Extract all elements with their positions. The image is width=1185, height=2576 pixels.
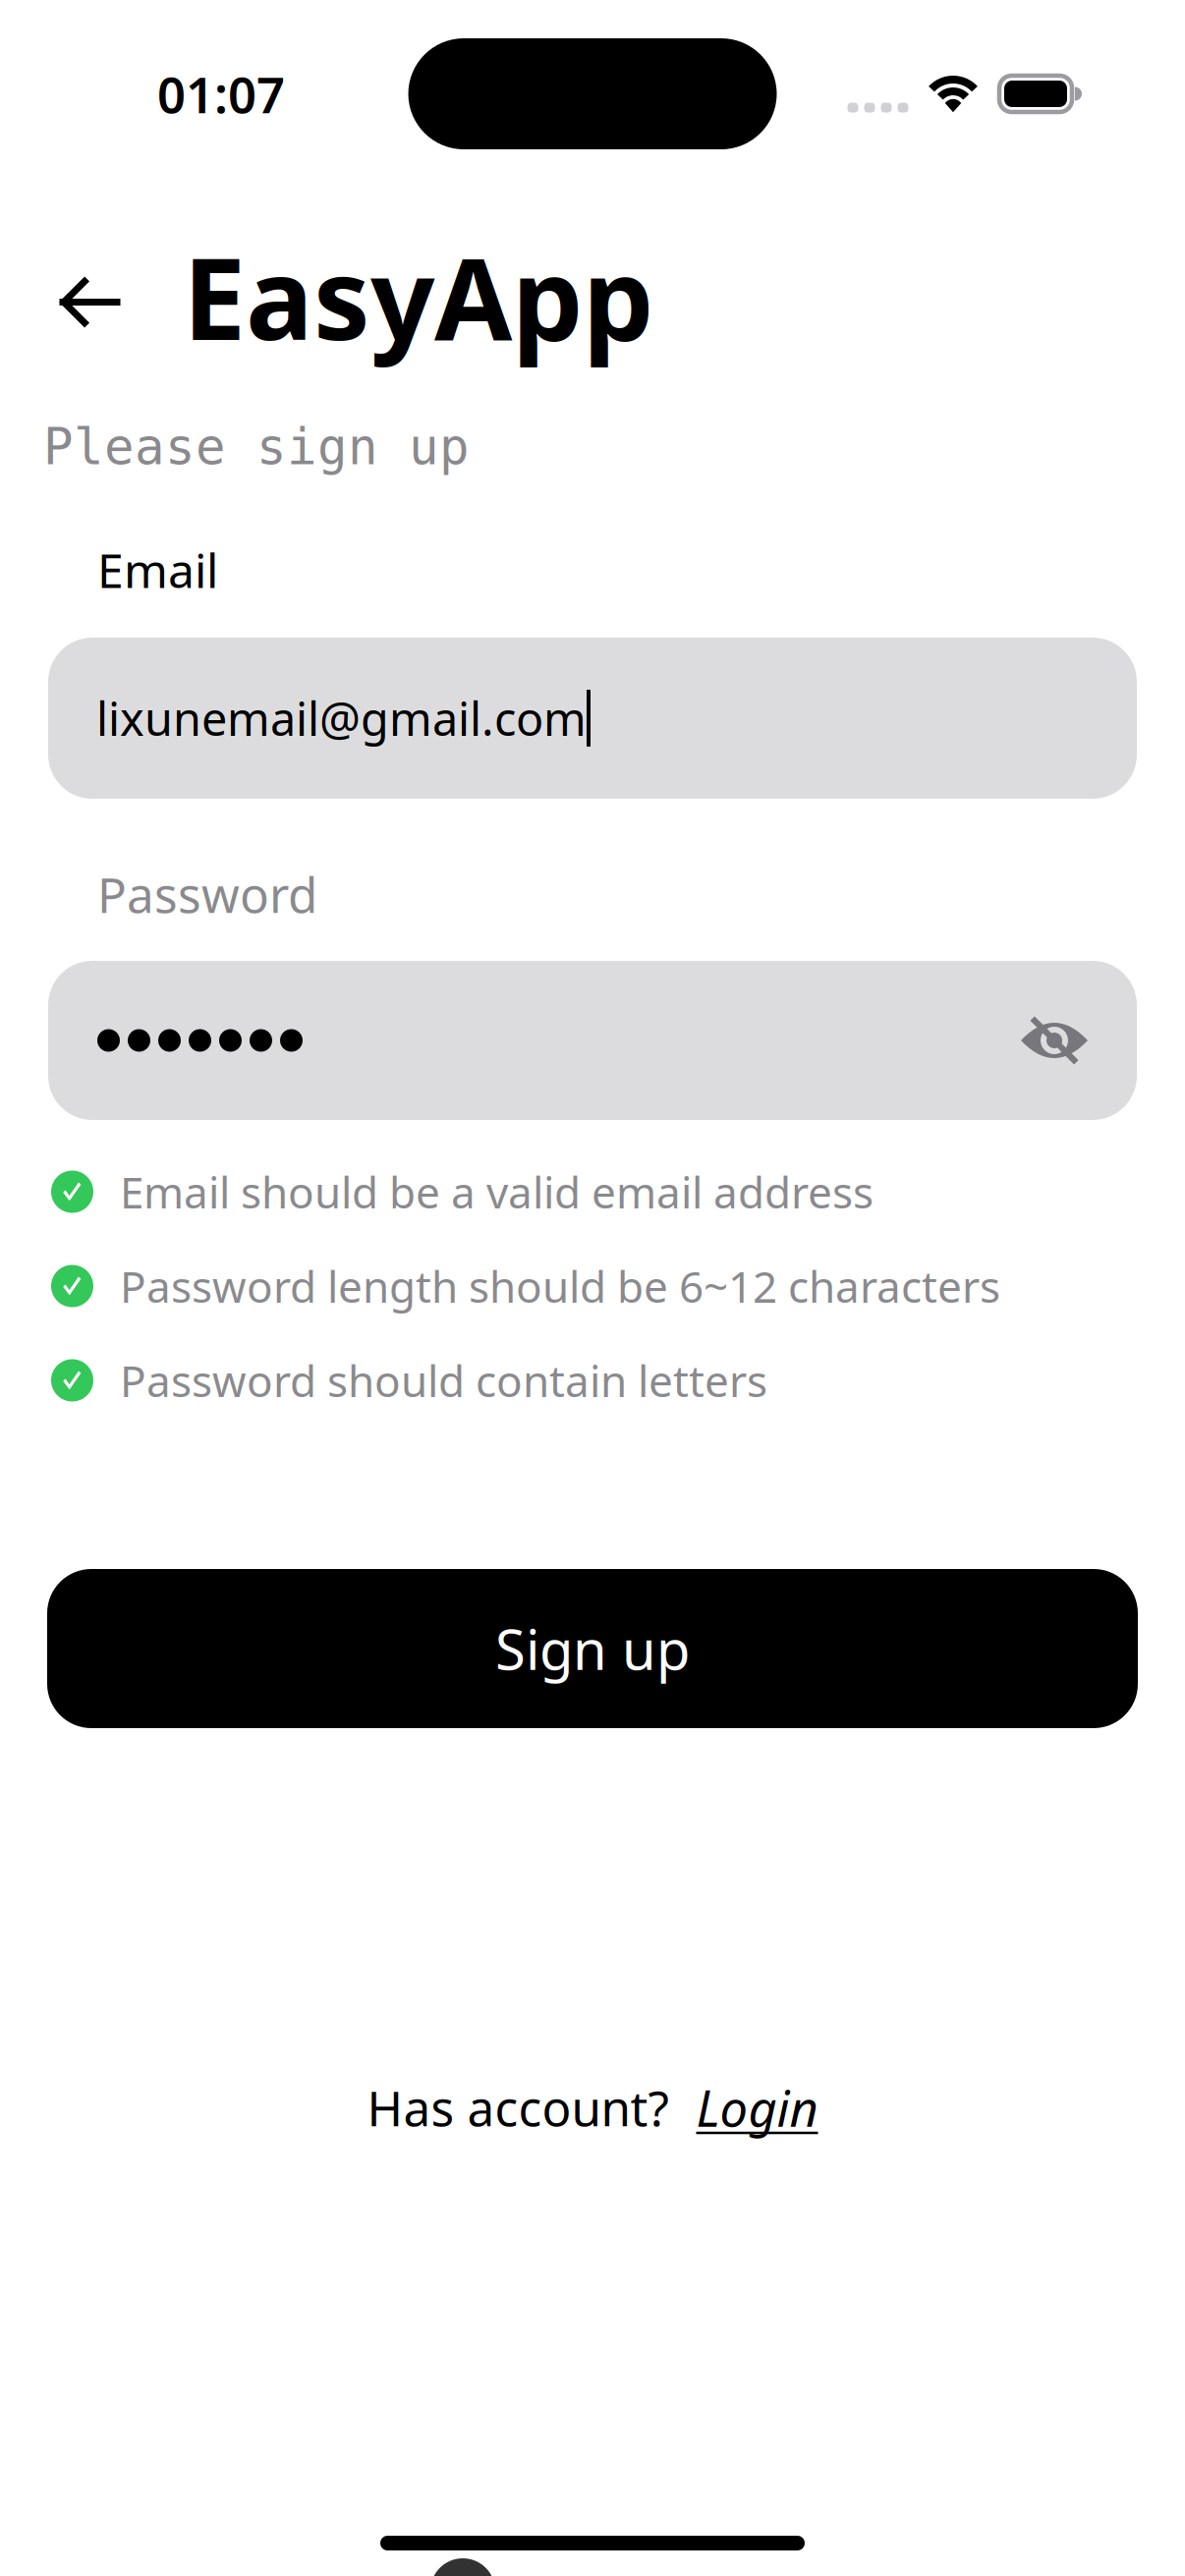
staticText: EasyApp xyxy=(183,221,653,371)
staticText: Email should be a valid email address xyxy=(120,1163,874,1220)
staticText: Sign up xyxy=(495,1612,690,1685)
staticText: Please sign up xyxy=(43,419,470,475)
staticText: Password should contain letters xyxy=(120,1352,767,1409)
button[interactable]: Sign up xyxy=(0,1569,1185,1728)
button[interactable]: Back xyxy=(44,224,135,368)
button[interactable]: Login xyxy=(696,2074,818,2140)
staticText: Password xyxy=(97,862,317,926)
staticText: Password length should be 6~12 character… xyxy=(120,1257,1000,1315)
staticText: Has account? xyxy=(367,2075,669,2139)
staticText: Login xyxy=(696,2074,818,2140)
staticText: 01:07 xyxy=(157,61,285,127)
button[interactable]: Show password xyxy=(1000,986,1108,1094)
staticText: Email xyxy=(97,538,218,601)
staticText: lixunemail@gmail.com xyxy=(96,688,587,749)
